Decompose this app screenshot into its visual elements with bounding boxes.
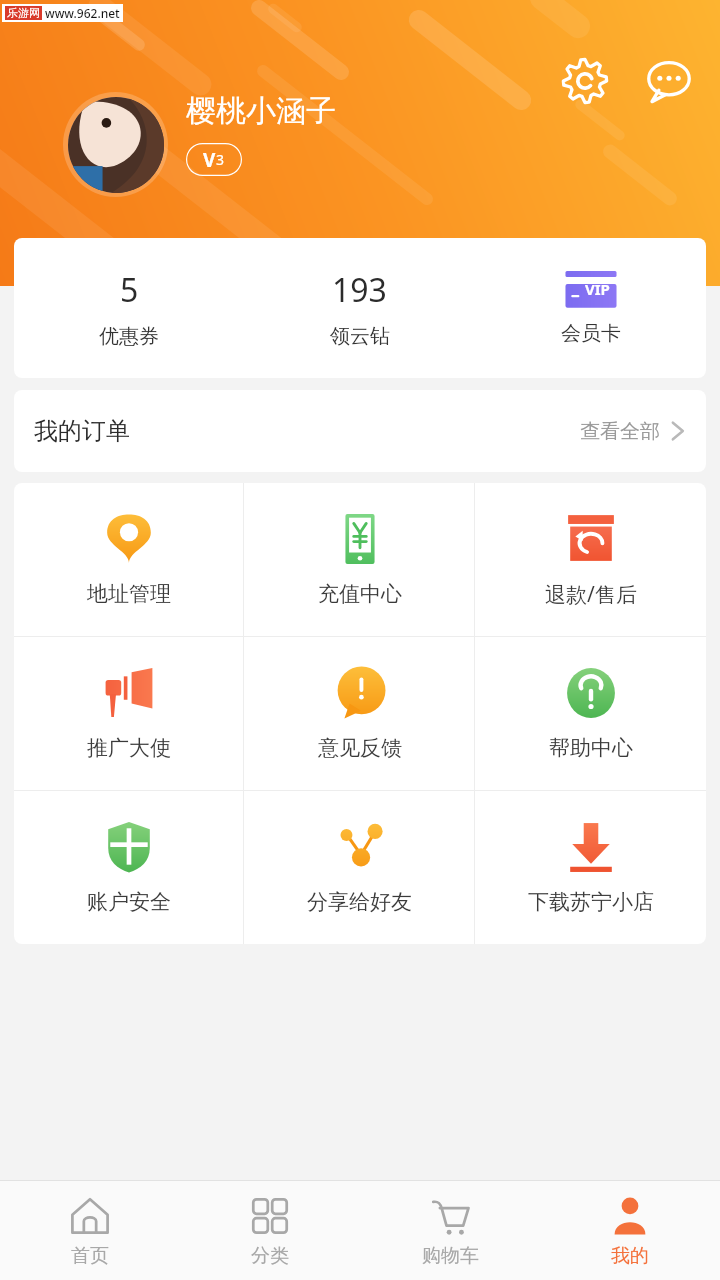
staticText: 购物车 bbox=[422, 1244, 479, 1268]
button[interactable]: 充值中心 bbox=[244, 483, 475, 637]
button[interactable]: V bbox=[186, 143, 242, 176]
button[interactable]: 分类 bbox=[180, 1181, 360, 1280]
button[interactable]: 意见反馈 bbox=[244, 637, 475, 791]
button[interactable]: Settings bbox=[556, 52, 614, 110]
button[interactable]: Avatar bbox=[63, 92, 168, 197]
staticText: 分类 bbox=[251, 1244, 289, 1268]
staticText: 退款/售后 bbox=[545, 580, 637, 609]
staticText: 樱桃小涵子 bbox=[186, 92, 336, 130]
staticText: 193 bbox=[332, 268, 387, 312]
staticText: VIP bbox=[585, 279, 610, 299]
staticText: 意见反馈 bbox=[318, 735, 402, 761]
staticText: 我的 bbox=[611, 1244, 649, 1268]
button[interactable]: 首页 bbox=[0, 1181, 180, 1280]
button[interactable]: 地址管理 bbox=[14, 483, 244, 637]
button[interactable]: 我的 bbox=[540, 1181, 720, 1280]
staticText: 首页 bbox=[71, 1244, 109, 1268]
button[interactable]: 退款/售后 bbox=[475, 483, 706, 637]
staticText: 我的订单 bbox=[34, 416, 130, 446]
staticText: 乐游网 bbox=[7, 6, 40, 20]
staticText: 会员卡 bbox=[561, 321, 621, 346]
staticText: 充值中心 bbox=[318, 581, 402, 607]
button[interactable]: 购物车 bbox=[360, 1181, 540, 1280]
button[interactable]: 会员卡 bbox=[475, 238, 706, 378]
button[interactable]: 我的订单 bbox=[14, 390, 706, 472]
staticText: 账户安全 bbox=[87, 889, 171, 915]
staticText: 地址管理 bbox=[87, 581, 171, 607]
button[interactable]: 193 bbox=[244, 238, 475, 378]
button[interactable]: 下载苏宁小店 bbox=[475, 791, 706, 944]
staticText: 帮助中心 bbox=[549, 735, 633, 761]
button[interactable]: 推广大使 bbox=[14, 637, 244, 791]
staticText: 分享给好友 bbox=[307, 889, 412, 915]
button[interactable]: 帮助中心 bbox=[475, 637, 706, 791]
button[interactable]: 分享给好友 bbox=[244, 791, 475, 944]
staticText: 5 bbox=[120, 268, 139, 312]
staticText: 优惠券 bbox=[99, 324, 159, 349]
staticText: 查看全部 bbox=[580, 419, 660, 444]
staticText: 推广大使 bbox=[87, 735, 171, 761]
button[interactable]: 5 bbox=[14, 238, 244, 378]
staticText: V bbox=[203, 147, 216, 173]
staticText: 下载苏宁小店 bbox=[528, 889, 654, 915]
staticText: www.962.net bbox=[45, 5, 120, 21]
staticText: 领云钻 bbox=[330, 324, 390, 349]
staticText: 3 bbox=[216, 150, 225, 169]
button[interactable]: Messages bbox=[640, 52, 698, 110]
button[interactable]: 账户安全 bbox=[14, 791, 244, 944]
